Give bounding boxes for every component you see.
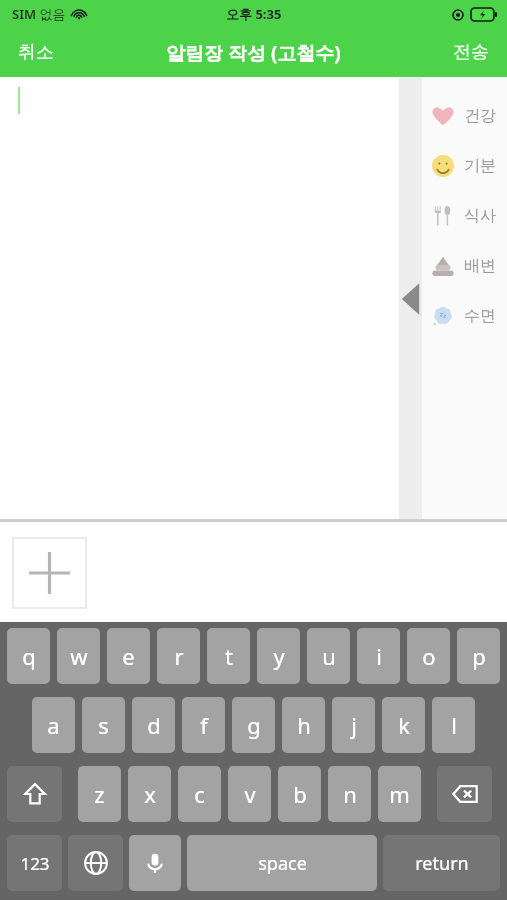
staticText: 수면 (464, 306, 496, 326)
button[interactable]: 전송 (435, 31, 507, 74)
staticText: w (70, 641, 88, 671)
button[interactable]: v (228, 766, 271, 822)
button[interactable]: z (78, 766, 121, 822)
staticText: 식사 (464, 206, 496, 226)
button[interactable]: y (257, 628, 300, 684)
button[interactable]: f (182, 697, 225, 753)
staticText: d (147, 710, 161, 740)
staticText: c (194, 779, 205, 809)
button[interactable]: 기분 (422, 141, 507, 191)
staticText: 배변 (464, 256, 496, 276)
staticText: b (293, 779, 307, 809)
button[interactable]: l (432, 697, 475, 753)
button[interactable]: t (207, 628, 250, 684)
staticText: y (273, 641, 285, 671)
button[interactable]: Collapse panel (399, 281, 422, 317)
staticText: 알림장 작성 (고철수) (166, 40, 341, 66)
staticText: r (174, 641, 184, 671)
button[interactable]: g (232, 697, 275, 753)
button[interactable]: q (7, 628, 50, 684)
button[interactable]: 수면 (422, 291, 507, 341)
staticText: g (247, 710, 261, 740)
staticText: o (422, 641, 436, 671)
staticText: a (47, 710, 60, 740)
staticText: x (144, 779, 156, 809)
staticText: 기분 (464, 156, 496, 176)
button[interactable]: o (407, 628, 450, 684)
staticText: 건강 (464, 106, 496, 126)
staticText: t (225, 641, 233, 671)
button[interactable]: 건강 (422, 91, 507, 141)
staticText: p (472, 641, 486, 671)
button[interactable]: u (307, 628, 350, 684)
button[interactable]: Shift (7, 766, 62, 822)
staticText: 전송 (453, 41, 489, 64)
button[interactable]: 123 (7, 835, 62, 891)
button[interactable]: Add attachment (13, 538, 86, 608)
button[interactable]: b (278, 766, 321, 822)
staticText: z (94, 779, 105, 809)
button[interactable]: d (132, 697, 175, 753)
button[interactable]: s (82, 697, 125, 753)
button[interactable]: p (457, 628, 500, 684)
button[interactable]: m (378, 766, 421, 822)
staticText: q (22, 641, 36, 671)
button[interactable]: w (57, 628, 100, 684)
button[interactable]: n (328, 766, 371, 822)
button[interactable]: h (282, 697, 325, 753)
staticText: return (415, 851, 469, 876)
staticText: s (98, 710, 109, 740)
button[interactable]: Change keyboard (68, 835, 123, 891)
staticText: u (322, 641, 336, 671)
staticText: l (451, 710, 457, 740)
button[interactable]: Backspace (437, 766, 492, 822)
button[interactable]: 배변 (422, 241, 507, 291)
button[interactable]: a (32, 697, 75, 753)
button[interactable]: x (128, 766, 171, 822)
staticText: 123 (20, 852, 50, 875)
button[interactable]: r (157, 628, 200, 684)
staticText: i (376, 641, 382, 671)
button[interactable]: Dictation (129, 835, 181, 891)
staticText: n (343, 779, 357, 809)
staticText: k (398, 710, 410, 740)
button[interactable]: k (382, 697, 425, 753)
button[interactable]: 취소 (0, 31, 72, 74)
button[interactable]: c (178, 766, 221, 822)
staticText: e (122, 641, 135, 671)
staticText: j (351, 710, 357, 740)
staticText: h (297, 710, 311, 740)
button[interactable]: space (187, 835, 377, 891)
staticText: SIM 없음 (12, 5, 66, 23)
button[interactable]: e (107, 628, 150, 684)
staticText: f (200, 710, 208, 740)
button[interactable]: j (332, 697, 375, 753)
button[interactable]: i (357, 628, 400, 684)
staticText: 취소 (18, 41, 54, 64)
button[interactable]: 식사 (422, 191, 507, 241)
staticText: m (389, 779, 410, 809)
staticText: v (244, 779, 256, 809)
staticText: space (258, 851, 307, 876)
button[interactable]: return (383, 835, 500, 891)
staticText: 오후 5:35 (226, 5, 282, 23)
